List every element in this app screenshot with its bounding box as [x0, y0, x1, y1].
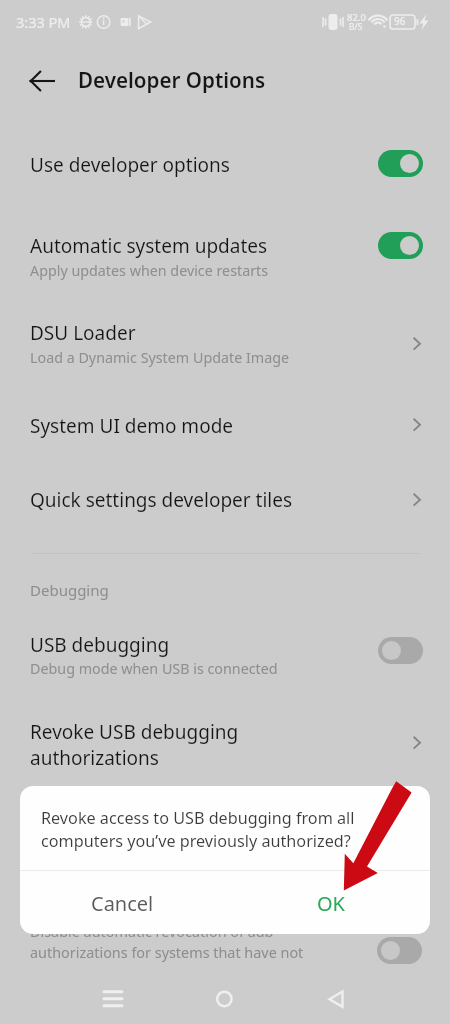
staticText: 3:33 PM: [16, 12, 71, 32]
button[interactable]: [0, 394, 450, 458]
button[interactable]: Open: [400, 410, 430, 440]
staticText: 96: [394, 14, 406, 28]
button[interactable]: Open: [400, 485, 430, 515]
staticText: B/S: [349, 21, 363, 33]
button[interactable]: [0, 302, 450, 380]
staticText: Use developer options: [30, 152, 230, 178]
staticText: OK: [317, 890, 345, 917]
staticText: Cancel: [91, 890, 154, 917]
staticText: 82.0: [347, 11, 366, 24]
staticText: System UI demo mode: [30, 413, 234, 439]
staticText: Disable automatic revocation of adb auth…: [30, 922, 304, 963]
button[interactable]: [0, 214, 450, 294]
staticText: Debugging: [30, 580, 109, 600]
staticText: Developer Options: [78, 66, 266, 94]
button[interactable]: [0, 132, 450, 194]
button[interactable]: Back: [20, 59, 64, 103]
staticText: Load a Dynamic System Update Image: [30, 348, 290, 367]
button[interactable]: [0, 706, 450, 782]
button[interactable]: Toggle off: [378, 637, 423, 664]
button[interactable]: OK: [225, 871, 430, 934]
button[interactable]: Toggle on: [378, 150, 423, 177]
button[interactable]: Open: [400, 329, 430, 359]
button[interactable]: Back: [312, 975, 360, 1023]
staticText: Revoke access to USB debugging from all …: [41, 807, 389, 852]
staticText: Debug mode when USB is connected: [30, 659, 278, 678]
staticText: Automatic system updates: [30, 233, 268, 259]
button[interactable]: [0, 470, 450, 534]
button[interactable]: [0, 614, 450, 692]
staticText: Apply updates when device restarts: [30, 261, 269, 280]
staticText: Quick settings developer tiles: [30, 487, 293, 513]
button[interactable]: Cancel: [20, 871, 225, 934]
button[interactable]: Toggle off: [377, 937, 422, 964]
button[interactable]: Toggle on: [378, 232, 423, 259]
button[interactable]: Home: [200, 975, 248, 1023]
staticText: USB debugging: [30, 632, 170, 658]
button[interactable]: Open: [400, 728, 430, 758]
staticText: DSU Loader: [30, 320, 136, 346]
staticText: Revoke USB debugging authorizations: [30, 719, 239, 771]
button[interactable]: [0, 900, 450, 976]
button[interactable]: Recent apps: [88, 975, 136, 1023]
